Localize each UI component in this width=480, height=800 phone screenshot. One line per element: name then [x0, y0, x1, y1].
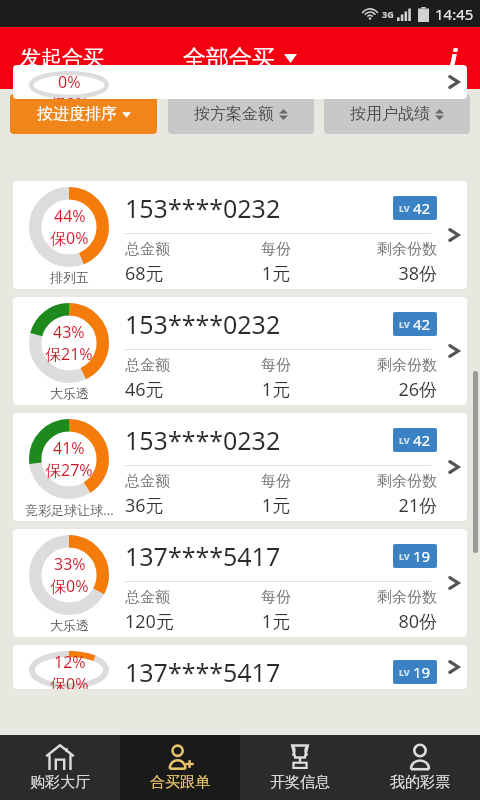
other: Details — [441, 529, 467, 637]
staticText: 0% — [58, 71, 81, 93]
staticText: LV — [399, 550, 410, 562]
button[interactable]: 44% — [13, 181, 467, 289]
staticText: 120元 — [125, 609, 233, 634]
staticText: 44% — [54, 205, 86, 227]
staticText: 19 — [413, 546, 431, 566]
staticText: 我的彩票 — [390, 773, 450, 792]
button[interactable]: 全部合买 — [171, 27, 309, 89]
staticText: 大乐透 — [50, 617, 89, 633]
button[interactable]: 开奖信息 — [240, 735, 360, 800]
staticText: 按用户战绩 — [350, 104, 430, 124]
staticText: 总金额 — [125, 240, 233, 259]
staticText: 41% — [53, 437, 85, 459]
staticText: 保0% — [50, 575, 89, 597]
button[interactable]: 0% — [13, 65, 467, 99]
staticText: 保21% — [45, 343, 93, 365]
staticText: 总金额 — [125, 472, 233, 491]
button[interactable]: 购彩大厅 — [0, 735, 120, 800]
staticText: 12% — [54, 651, 86, 673]
staticText: 3G — [382, 8, 394, 20]
staticText: 80份 — [319, 609, 437, 634]
staticText: 每份 — [233, 472, 319, 491]
staticText: 33% — [54, 553, 86, 575]
button[interactable]: 按用户战绩 — [324, 94, 470, 134]
button[interactable]: 合买跟单 — [120, 735, 240, 800]
other: Details — [441, 413, 467, 521]
staticText: 19 — [413, 662, 431, 682]
button[interactable]: 我的彩票 — [360, 735, 480, 800]
staticText: LV — [399, 202, 410, 214]
staticText: 153****0232 — [125, 307, 281, 341]
staticText: 购彩大厅 — [30, 773, 90, 792]
staticText: 每份 — [233, 240, 319, 259]
staticText: 21份 — [319, 493, 437, 518]
staticText: LV — [399, 666, 410, 678]
button[interactable]: Info — [427, 27, 480, 89]
staticText: 14:45 — [435, 4, 474, 24]
staticText: 竞彩足球让球... — [25, 501, 114, 519]
button[interactable]: 41% — [13, 413, 467, 521]
staticText: 总金额 — [125, 588, 233, 607]
other: Details — [441, 297, 467, 405]
staticText: 全部合买 — [183, 44, 275, 73]
staticText: 发起合买 — [20, 45, 104, 71]
staticText: 43% — [53, 321, 85, 343]
other: Details — [441, 181, 467, 289]
staticText: 按进度排序 — [37, 104, 117, 124]
staticText: 保27% — [45, 459, 93, 481]
staticText: 剩余份数 — [319, 588, 437, 607]
staticText: 137****5417 — [125, 655, 281, 689]
staticText: 42 — [413, 198, 431, 218]
staticText: 剩余份数 — [319, 356, 437, 375]
staticText: 剩余份数 — [319, 240, 437, 259]
staticText: 137****5417 — [125, 539, 281, 573]
staticText: 总金额 — [125, 356, 233, 375]
staticText: 1元 — [233, 377, 319, 402]
staticText: 开奖信息 — [270, 773, 330, 792]
staticText: 合买跟单 — [150, 773, 210, 792]
staticText: 按方案金额 — [194, 104, 274, 124]
staticText: LV — [399, 434, 410, 446]
staticText: 46元 — [125, 377, 233, 402]
staticText: 26份 — [319, 377, 437, 402]
other: Details — [441, 65, 467, 99]
staticText: 大乐透 — [50, 385, 89, 401]
staticText: 1元 — [233, 493, 319, 518]
button[interactable]: 12% — [13, 645, 467, 689]
staticText: 42 — [413, 430, 431, 450]
staticText: 排列五 — [50, 269, 89, 285]
staticText: 153****0232 — [125, 423, 281, 457]
staticText: 剩余份数 — [319, 472, 437, 491]
staticText: 38份 — [319, 261, 437, 286]
button[interactable]: 发起合买 — [0, 27, 124, 89]
staticText: 1元 — [233, 609, 319, 634]
staticText: i — [449, 40, 458, 77]
other: Details — [441, 645, 467, 689]
staticText: 42 — [413, 314, 431, 334]
button[interactable]: 按方案金额 — [168, 94, 314, 134]
staticText: 保0% — [50, 673, 89, 689]
button[interactable]: 33% — [13, 529, 467, 637]
staticText: 每份 — [233, 588, 319, 607]
staticText: LV — [399, 318, 410, 330]
staticText: 保0% — [50, 227, 89, 249]
staticText: 1元 — [233, 261, 319, 286]
staticText: 每份 — [233, 356, 319, 375]
staticText: 68元 — [125, 261, 233, 286]
staticText: 保0% — [50, 93, 89, 99]
button[interactable]: 43% — [13, 297, 467, 405]
staticText: 36元 — [125, 493, 233, 518]
staticText: 153****0232 — [125, 191, 281, 225]
button[interactable]: 按进度排序 — [10, 94, 157, 134]
